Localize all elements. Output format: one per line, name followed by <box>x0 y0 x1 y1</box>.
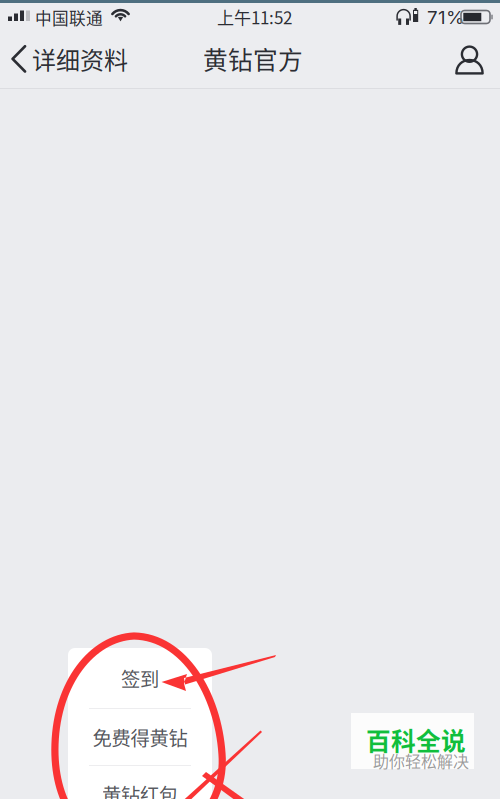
button[interactable]: 详细资料 <box>7 32 132 85</box>
button[interactable]: 黄钻红包 <box>68 766 212 799</box>
button[interactable]: 签到 <box>68 648 212 708</box>
staticText: 签到 <box>121 664 159 692</box>
staticText: 免费得黄钻 <box>92 723 187 751</box>
staticText: 中国联通 <box>35 5 103 30</box>
staticText: 黄钻官方 <box>203 41 303 77</box>
staticText: 上午11:52 <box>217 4 292 29</box>
button[interactable]: 免费得黄钻 <box>68 709 212 765</box>
staticText: 助你轻松解决 <box>373 749 469 772</box>
staticText: 黄钻红包 <box>102 780 178 799</box>
staticText: 详细资料 <box>32 41 128 76</box>
staticText: 71% <box>427 6 464 29</box>
button[interactable]: Profile <box>445 34 494 85</box>
staticText: 百科全说 <box>366 722 466 758</box>
